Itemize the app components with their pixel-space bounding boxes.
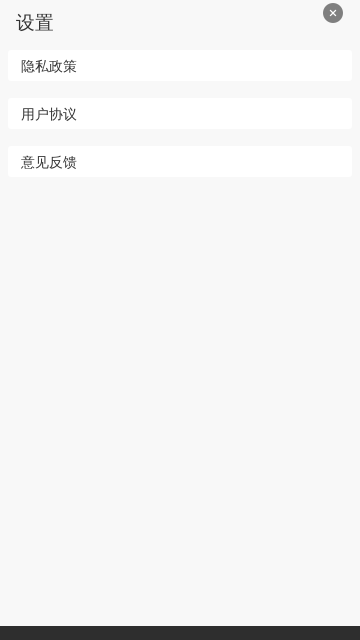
staticText: 设置 [16,11,54,34]
button[interactable]: 用户协议 [8,98,352,129]
button[interactable]: 隐私政策 [8,50,352,81]
staticText: 隐私政策 [21,58,77,75]
button[interactable]: 意见反馈 [8,146,352,177]
staticText: 意见反馈 [21,154,77,171]
staticText: 用户协议 [21,106,77,123]
button[interactable]: Close [323,3,343,23]
